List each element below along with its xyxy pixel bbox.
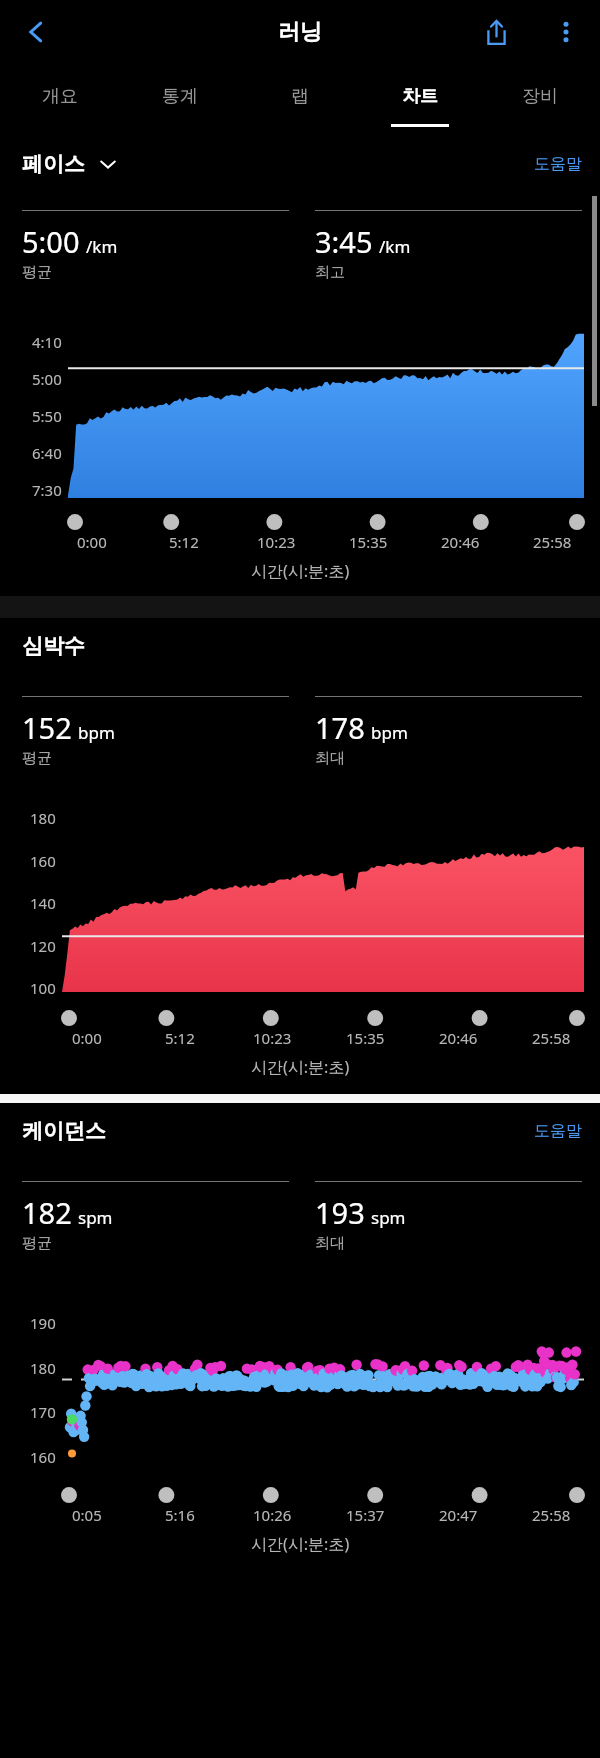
staticText: 평균 xyxy=(22,749,52,768)
staticText: 0:05 xyxy=(72,1505,102,1525)
staticText: 180 xyxy=(30,1358,56,1378)
staticText: /km xyxy=(86,235,118,258)
staticText: 15:37 xyxy=(346,1505,385,1525)
staticText: 랩 xyxy=(291,85,309,108)
staticText: 페이스 xyxy=(22,151,85,177)
staticText: 15:35 xyxy=(349,532,388,552)
button[interactable]: Back xyxy=(10,6,62,58)
staticText: 152 xyxy=(22,708,72,747)
staticText: 케이던스 xyxy=(22,1118,106,1144)
staticText: bpm xyxy=(78,721,115,744)
button[interactable]: 장비 xyxy=(480,63,600,136)
staticText: 10:26 xyxy=(253,1505,292,1525)
staticText: 시간(시:분:초) xyxy=(251,560,350,582)
staticText: 평균 xyxy=(22,1234,52,1253)
staticText: spm xyxy=(78,1206,113,1229)
staticText: 개요 xyxy=(42,85,78,108)
staticText: 20:47 xyxy=(439,1505,478,1525)
staticText: 시간(시:분:초) xyxy=(251,1533,350,1555)
staticText: 장비 xyxy=(522,85,558,108)
staticText: 160 xyxy=(30,1447,56,1467)
button[interactable]: More options xyxy=(540,6,592,58)
button[interactable]: 페이스 xyxy=(22,151,117,177)
staticText: bpm xyxy=(371,721,408,744)
staticText: 최대 xyxy=(315,1234,345,1253)
staticText: /km xyxy=(379,235,411,258)
staticText: 10:23 xyxy=(257,532,296,552)
staticText: 5:00 xyxy=(22,222,80,261)
staticText: 러닝 xyxy=(278,18,322,46)
staticText: 25:58 xyxy=(532,1028,571,1048)
staticText: 5:12 xyxy=(165,1028,195,1048)
staticText: 6:40 xyxy=(32,443,62,463)
staticText: 25:58 xyxy=(532,1505,571,1525)
staticText: 7:30 xyxy=(32,480,62,500)
staticText: 도움말 xyxy=(534,154,582,174)
staticText: 140 xyxy=(30,893,56,913)
button[interactable]: 통계 xyxy=(120,63,240,136)
staticText: 4:10 xyxy=(32,332,62,352)
button[interactable]: 심박수 xyxy=(22,633,85,659)
staticText: 10:23 xyxy=(253,1028,292,1048)
staticText: 5:00 xyxy=(32,369,62,389)
staticText: 차트 xyxy=(402,85,438,108)
button[interactable]: 개요 xyxy=(0,63,120,136)
button[interactable]: 케이던스 xyxy=(22,1118,106,1144)
staticText: 178 xyxy=(315,708,365,747)
staticText: 120 xyxy=(30,936,56,956)
staticText: 심박수 xyxy=(22,633,85,659)
button[interactable]: 도움말 xyxy=(534,1121,582,1141)
staticText: 도움말 xyxy=(534,1121,582,1141)
staticText: 시간(시:분:초) xyxy=(251,1056,350,1078)
staticText: 20:46 xyxy=(441,532,480,552)
staticText: 5:50 xyxy=(32,406,62,426)
staticText: 100 xyxy=(30,978,56,998)
staticText: 25:58 xyxy=(533,532,572,552)
staticText: 170 xyxy=(30,1402,56,1422)
staticText: 193 xyxy=(315,1193,365,1232)
staticText: 5:16 xyxy=(165,1505,195,1525)
staticText: 190 xyxy=(30,1313,56,1333)
button[interactable]: 랩 xyxy=(240,63,360,136)
staticText: 182 xyxy=(22,1193,72,1232)
staticText: 최고 xyxy=(315,263,345,282)
staticText: 최대 xyxy=(315,749,345,768)
staticText: spm xyxy=(371,1206,406,1229)
staticText: 통계 xyxy=(162,85,198,108)
staticText: 5:12 xyxy=(169,532,199,552)
staticText: 0:00 xyxy=(77,532,107,552)
staticText: 3:45 xyxy=(315,222,373,261)
staticText: 180 xyxy=(30,808,56,828)
staticText: 평균 xyxy=(22,263,52,282)
staticText: 160 xyxy=(30,851,56,871)
staticText: 0:00 xyxy=(72,1028,102,1048)
button[interactable]: 차트 xyxy=(360,63,480,136)
staticText: 15:35 xyxy=(346,1028,385,1048)
button[interactable]: Share xyxy=(470,6,522,58)
button[interactable]: 도움말 xyxy=(534,154,582,174)
staticText: 20:46 xyxy=(439,1028,478,1048)
